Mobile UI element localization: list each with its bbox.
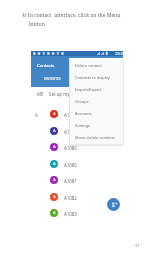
staticText: Import/Export (75, 87, 102, 92)
staticText: A (35, 112, 38, 118)
button[interactable]: A (50, 157, 142, 171)
staticText: Contacts to display (75, 75, 110, 80)
staticText: Contacts (37, 63, 55, 69)
button[interactable]: Delete contact (70, 59, 123, 71)
staticText: A (53, 177, 56, 183)
staticText: Accounts (75, 111, 92, 116)
staticText: 23:5 (115, 51, 123, 56)
staticText: A1081 (64, 178, 77, 184)
button[interactable]: Share visible contacts (70, 131, 123, 143)
button[interactable]: Accounts (70, 107, 123, 119)
staticText: FAVORITES (44, 77, 61, 81)
staticText: Groups (75, 99, 89, 104)
staticText: Share visible contacts (75, 135, 115, 140)
button[interactable]: Import/Export (70, 83, 123, 95)
button[interactable]: Groups (70, 95, 123, 107)
staticText: 4) In contact interface, click on the Me… (22, 12, 121, 19)
button[interactable]: Settings (70, 119, 123, 131)
staticText: A (53, 128, 56, 134)
staticText: 37 (135, 243, 140, 248)
button[interactable]: A (50, 124, 142, 138)
staticText: Delete contact (75, 63, 102, 68)
staticText: A (53, 210, 56, 216)
button[interactable]: A (50, 140, 142, 154)
staticText: Settings (75, 123, 90, 128)
button[interactable]: A (50, 107, 142, 121)
staticText: A (53, 194, 56, 200)
staticText: A1079 (64, 129, 77, 135)
staticText: Set up my p (49, 91, 74, 97)
staticText: A1080 (64, 145, 77, 151)
staticText: ME (37, 91, 44, 97)
staticText: A1078 (64, 112, 77, 118)
button[interactable]: Contacts to display (70, 71, 123, 83)
staticText: A1083 (64, 211, 77, 217)
button[interactable]: Add contact (107, 198, 120, 211)
staticText: A (53, 144, 56, 150)
staticText: A (53, 111, 56, 117)
staticText: A1082 (64, 195, 77, 201)
button[interactable]: A (50, 173, 142, 187)
button[interactable]: A (50, 206, 142, 220)
staticText: button (29, 21, 45, 28)
staticText: A1080 (64, 162, 77, 168)
staticText: A (53, 161, 56, 167)
button[interactable]: A (50, 190, 142, 204)
